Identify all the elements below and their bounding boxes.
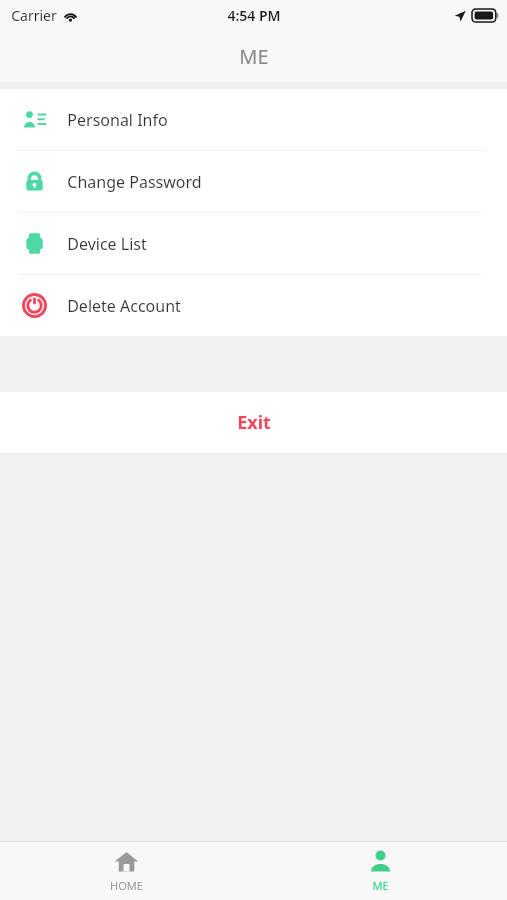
staticText: Device List [67, 233, 147, 255]
staticText: Change Password [67, 171, 202, 193]
button[interactable]: Personal Info [0, 89, 507, 151]
staticText: Personal Info [67, 109, 168, 131]
staticText: Delete Account [67, 295, 181, 317]
staticText: 4:54 PM [227, 6, 281, 25]
button[interactable]: Device List [0, 213, 507, 275]
staticText: ME [239, 43, 269, 70]
staticText: ME [372, 878, 389, 893]
staticText: Carrier [11, 6, 57, 25]
button[interactable]: Change Password [0, 151, 507, 213]
button[interactable]: Exit [0, 392, 507, 453]
staticText: Exit [237, 410, 271, 435]
button[interactable]: HOME [0, 849, 253, 893]
button[interactable]: ME [253, 849, 507, 893]
button[interactable]: Delete Account [0, 275, 507, 336]
staticText: HOME [110, 878, 143, 893]
